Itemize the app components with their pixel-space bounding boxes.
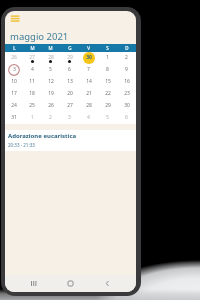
staticText: maggio 2021 <box>10 30 69 43</box>
button[interactable]: 7 <box>79 64 98 76</box>
staticText: 3 <box>68 114 71 121</box>
button[interactable]: 23 <box>117 88 136 100</box>
button[interactable]: 9 <box>117 64 136 76</box>
button[interactable]: 13 <box>60 76 79 88</box>
staticText: 6 <box>125 114 128 121</box>
staticText: 3 <box>13 66 16 73</box>
staticText: 6 <box>68 66 71 73</box>
staticText: 29 <box>67 54 73 61</box>
button[interactable]: 25 <box>23 100 41 112</box>
staticText: 21 <box>86 90 92 97</box>
button[interactable]: 29 <box>98 100 117 112</box>
button[interactable]: 2 <box>41 112 60 124</box>
staticText: V <box>87 45 90 51</box>
button[interactable]: 1 <box>23 112 41 124</box>
staticText: 29 <box>105 102 111 109</box>
button[interactable]: 8 <box>98 64 117 76</box>
staticText: 19 <box>48 90 54 97</box>
button[interactable]: Adorazione eucaristica <box>5 130 136 151</box>
staticText: 31 <box>11 114 17 121</box>
button[interactable]: 27 <box>60 100 79 112</box>
button[interactable]: 2 <box>117 52 136 64</box>
staticText: M <box>30 45 35 51</box>
button[interactable]: 15 <box>98 76 117 88</box>
staticText: 2 <box>125 54 128 61</box>
staticText: 22 <box>105 90 111 97</box>
staticText: 2 <box>49 114 52 121</box>
button[interactable]: 26 <box>5 52 23 64</box>
button[interactable]: 18 <box>23 88 41 100</box>
button[interactable]: 21 <box>79 88 98 100</box>
staticText: 26 <box>48 102 54 109</box>
staticText: G <box>68 45 72 51</box>
button[interactable]: 17 <box>5 88 23 100</box>
staticText: 14 <box>86 78 92 85</box>
button[interactable]: 6 <box>117 112 136 124</box>
button[interactable]: 16 <box>117 76 136 88</box>
staticText: 30 <box>86 54 92 61</box>
button[interactable]: 26 <box>41 100 60 112</box>
button[interactable]: 29 <box>60 52 79 64</box>
staticText: S <box>106 45 109 51</box>
staticText: 28 <box>48 54 54 61</box>
staticText: 26 <box>11 54 17 61</box>
button[interactable]: 28 <box>79 100 98 112</box>
staticText: 10 <box>11 78 17 85</box>
staticText: 5 <box>49 66 52 73</box>
button[interactable]: 5 <box>98 112 117 124</box>
button[interactable]: Back <box>99 275 116 292</box>
staticText: 5 <box>106 114 109 121</box>
staticText: 15 <box>105 78 111 85</box>
button[interactable]: 30 <box>117 100 136 112</box>
staticText: 17 <box>11 90 17 97</box>
staticText: 8 <box>106 66 109 73</box>
staticText: M <box>48 45 53 51</box>
staticText: 20:33 - 21:33 <box>8 142 35 148</box>
button[interactable]: 20 <box>60 88 79 100</box>
staticText: 20 <box>67 90 73 97</box>
button[interactable]: 12 <box>41 76 60 88</box>
button[interactable]: 4 <box>79 112 98 124</box>
staticText: 11 <box>29 78 35 85</box>
button[interactable]: 4 <box>23 64 41 76</box>
button[interactable]: 10 <box>5 76 23 88</box>
staticText: 30 <box>124 102 130 109</box>
staticText: 27 <box>29 54 35 61</box>
button[interactable]: Open navigation menu <box>8 13 22 25</box>
staticText: 4 <box>31 66 34 73</box>
staticText: 1 <box>31 114 34 121</box>
staticText: 23 <box>124 90 130 97</box>
staticText: 7 <box>87 66 90 73</box>
button[interactable]: 22 <box>98 88 117 100</box>
staticText: 1 <box>106 54 109 61</box>
staticText: Adorazione eucaristica <box>8 132 77 140</box>
button[interactable]: 24 <box>5 100 23 112</box>
staticText: 24 <box>11 102 17 109</box>
button[interactable]: 3 <box>60 112 79 124</box>
staticText: 13 <box>67 78 73 85</box>
button[interactable]: 3 <box>5 64 23 76</box>
button[interactable]: 6 <box>60 64 79 76</box>
staticText: 12 <box>48 78 54 85</box>
button[interactable]: 31 <box>5 112 23 124</box>
button[interactable]: 27 <box>23 52 41 64</box>
staticText: 25 <box>29 102 35 109</box>
staticText: 28 <box>86 102 92 109</box>
staticText: 9 <box>125 66 128 73</box>
button[interactable]: 1 <box>98 52 117 64</box>
button[interactable]: 11 <box>23 76 41 88</box>
button[interactable]: 19 <box>41 88 60 100</box>
staticText: 18 <box>29 90 35 97</box>
staticText: 16 <box>124 78 130 85</box>
staticText: L <box>13 45 16 51</box>
staticText: D <box>125 45 129 51</box>
button[interactable]: Recents <box>25 275 42 292</box>
button[interactable]: 30 <box>79 52 98 64</box>
button[interactable]: 28 <box>41 52 60 64</box>
staticText: 4 <box>87 114 90 121</box>
button[interactable]: Home <box>62 275 79 292</box>
staticText: 27 <box>67 102 73 109</box>
button[interactable]: 5 <box>41 64 60 76</box>
button[interactable]: 14 <box>79 76 98 88</box>
